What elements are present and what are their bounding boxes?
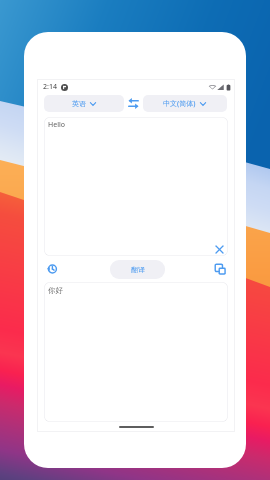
staticText: Hello (48, 120, 65, 130)
staticText: 你好 (48, 286, 63, 295)
button[interactable]: Swap languages (124, 95, 143, 112)
button[interactable]: Clear (211, 241, 227, 256)
staticText: 英语 (72, 99, 86, 108)
button[interactable]: 翻译 (110, 260, 165, 279)
button[interactable]: History (44, 261, 60, 277)
button[interactable]: Copy (212, 261, 228, 277)
button[interactable]: 英语 (44, 95, 124, 112)
staticText: 中文(简体) (163, 99, 196, 109)
button[interactable]: 中文(简体) (143, 95, 227, 112)
staticText: 2:14 (43, 82, 57, 92)
staticText: 翻译 (131, 265, 145, 274)
